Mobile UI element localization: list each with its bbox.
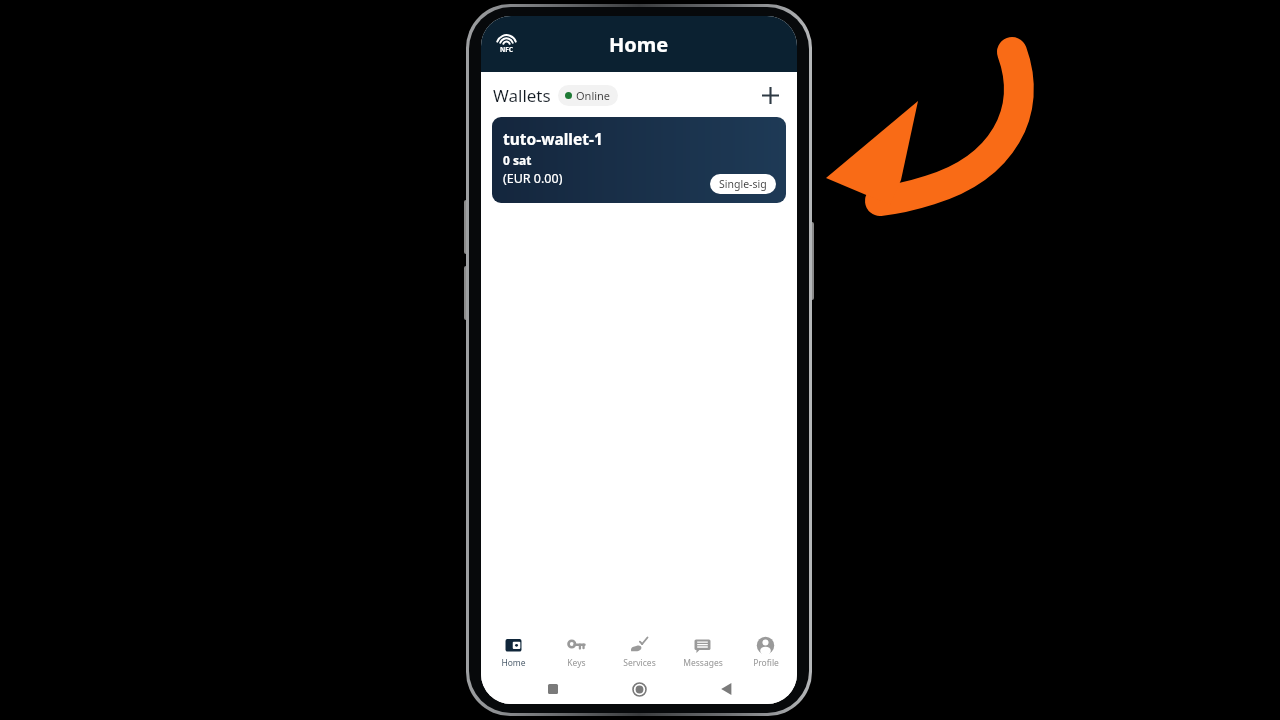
button[interactable]: Messages [671, 630, 734, 674]
button[interactable]: tuto-wallet-1 [492, 117, 786, 203]
staticText: (EUR 0.00) [503, 170, 563, 187]
staticText: Messages [683, 657, 723, 669]
staticText: Home [609, 31, 669, 58]
button[interactable]: Add wallet [755, 80, 785, 110]
staticText: NFC [500, 45, 514, 54]
button[interactable]: Online [558, 85, 618, 106]
staticText: Profile [753, 657, 779, 669]
button[interactable]: Home [624, 674, 654, 704]
staticText: 0 sat [503, 152, 532, 168]
staticText: Keys [567, 657, 586, 669]
staticText: tuto-wallet-1 [503, 128, 603, 149]
button[interactable]: Single-sig [710, 174, 776, 194]
staticText: Home [501, 657, 526, 669]
button[interactable]: NFC [491, 29, 521, 59]
staticText: Online [576, 88, 611, 103]
staticText: Single-sig [719, 177, 767, 191]
button[interactable]: Keys [545, 630, 608, 674]
button[interactable]: Home [481, 630, 545, 674]
button[interactable]: Back [711, 674, 741, 704]
button[interactable]: Services [608, 630, 671, 674]
staticText: Services [623, 657, 656, 669]
button[interactable]: Recents [538, 674, 568, 704]
staticText: Wallets [493, 84, 551, 107]
button[interactable]: Profile [734, 630, 797, 674]
